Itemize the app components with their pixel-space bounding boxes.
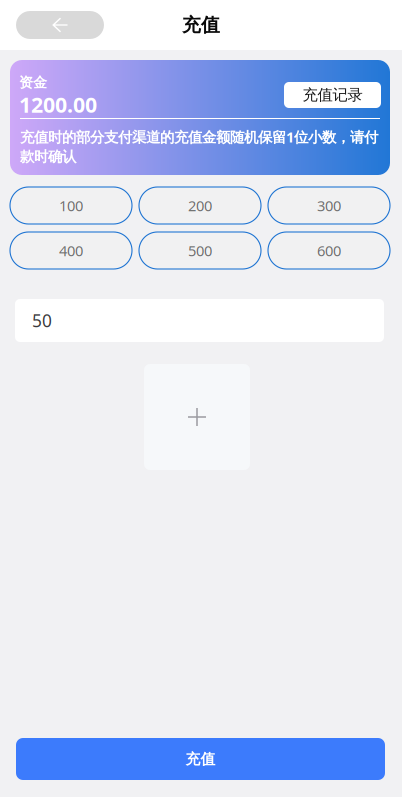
button[interactable]: 50 — [15, 299, 384, 342]
button[interactable]: 100 — [10, 187, 132, 224]
staticText: 400 — [59, 240, 83, 260]
staticText: 款时确认 — [20, 148, 76, 166]
button[interactable]: 500 — [139, 232, 261, 269]
staticText: 1200.00 — [19, 90, 97, 119]
staticText: 充值时的部分支付渠道的充值金额随机保留1位小数，请付 — [20, 127, 378, 147]
button[interactable]: Back — [16, 11, 104, 39]
button[interactable]: 200 — [139, 187, 261, 224]
staticText: 充值 — [185, 750, 215, 768]
staticText: 充值 — [182, 13, 220, 37]
button[interactable]: Upload image — [144, 364, 250, 470]
staticText: 300 — [317, 195, 341, 215]
button[interactable]: 600 — [268, 232, 390, 269]
button[interactable]: 充值记录 — [284, 82, 381, 108]
button[interactable]: 300 — [268, 187, 390, 224]
staticText: 50 — [32, 309, 52, 332]
button[interactable]: 400 — [10, 232, 132, 269]
staticText: 100 — [59, 195, 83, 215]
staticText: 资金 — [19, 74, 47, 91]
staticText: 600 — [317, 240, 341, 260]
staticText: 200 — [188, 195, 212, 215]
staticText: 500 — [188, 240, 212, 260]
staticText: 充值记录 — [302, 85, 362, 105]
button[interactable]: 充值 — [16, 738, 385, 780]
